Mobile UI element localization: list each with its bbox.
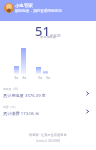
other: Details bbox=[85, 91, 90, 96]
staticText: 累计用电量 3576.39 度 bbox=[3, 93, 46, 99]
button[interactable]: 电费（元） bbox=[0, 104, 96, 118]
staticText: 千瓦时 bbox=[50, 34, 61, 39]
staticText: 6月 bbox=[45, 76, 52, 80]
staticText: 3月 bbox=[12, 76, 21, 80]
staticText: 本月用电量 bbox=[40, 35, 56, 39]
staticText: 客服电话 400-8888 bbox=[36, 139, 61, 143]
staticText: 用电量（度） bbox=[3, 87, 20, 91]
staticText: 51 bbox=[35, 22, 50, 40]
staticText: 小电管家 bbox=[15, 3, 33, 9]
staticText: 5月 bbox=[36, 76, 45, 80]
staticText: 电费（元） bbox=[3, 105, 17, 109]
button[interactable]: 用电量（度） bbox=[0, 86, 96, 100]
other: Details bbox=[85, 109, 90, 114]
staticText: 智慧家 · 让美好生活更简单 bbox=[29, 133, 67, 137]
staticText: 绑定电表，实时查看用电情况 bbox=[15, 9, 62, 14]
button[interactable]: 小电管家 bbox=[0, 0, 96, 21]
staticText: 4月 bbox=[21, 76, 28, 80]
staticText: 累计缴费 173.06 元 bbox=[3, 111, 40, 117]
